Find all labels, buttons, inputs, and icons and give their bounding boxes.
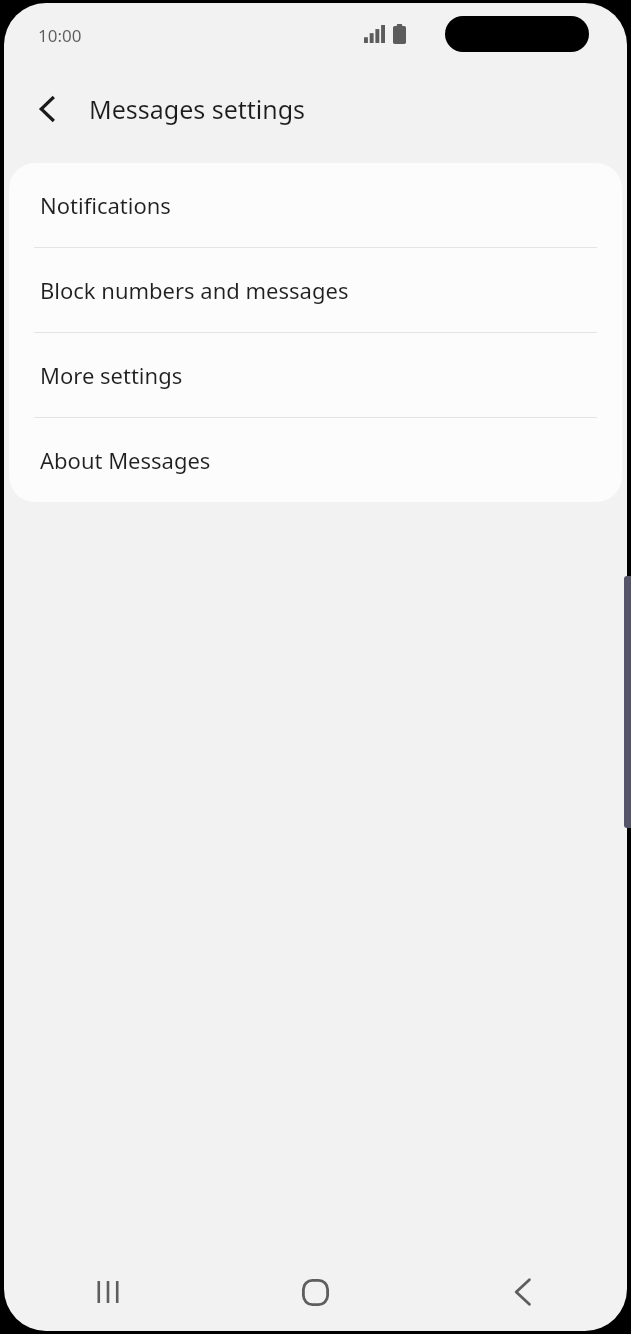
button[interactable]: Back [18,79,78,139]
staticText: Messages settings [89,92,306,126]
button[interactable]: Home [211,1253,419,1331]
button[interactable]: About Messages [9,418,622,502]
staticText: 10:00 [38,24,82,47]
button[interactable]: Notifications [9,163,622,247]
staticText: More settings [40,360,183,390]
staticText: About Messages [40,445,211,475]
button[interactable]: Block numbers and messages [9,248,622,332]
staticText: Notifications [40,190,171,220]
button[interactable]: Back [419,1253,627,1331]
staticText: Block numbers and messages [40,275,349,305]
button[interactable]: Recent apps [4,1253,211,1331]
button[interactable]: More settings [9,333,622,417]
